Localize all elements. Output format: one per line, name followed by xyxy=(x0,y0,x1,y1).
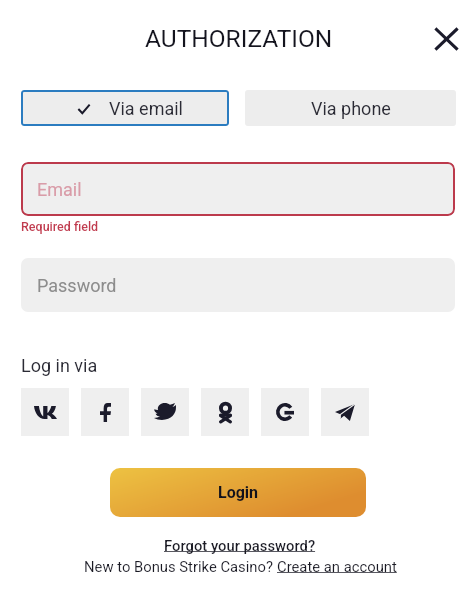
button[interactable]: Forgot your password? xyxy=(164,537,316,554)
button[interactable]: VK xyxy=(21,388,69,436)
staticText: Password xyxy=(37,275,117,296)
staticText: Log in via xyxy=(21,355,98,376)
button[interactable]: Via email xyxy=(21,90,229,126)
staticText: Via phone xyxy=(311,98,391,119)
button[interactable]: Facebook xyxy=(81,388,129,436)
button[interactable]: Close xyxy=(424,16,469,61)
button[interactable]: Twitter xyxy=(141,388,189,436)
button[interactable]: Google xyxy=(261,388,309,436)
button[interactable]: Login xyxy=(110,468,366,517)
staticText: New to Bonus Strike Casino? xyxy=(84,558,277,575)
button[interactable]: Password xyxy=(21,258,455,312)
staticText: Login xyxy=(218,483,259,502)
button[interactable]: Create an account xyxy=(277,558,397,575)
button[interactable]: Odnoklassniki xyxy=(201,388,249,436)
staticText: Via email xyxy=(109,98,183,119)
staticText: Email xyxy=(37,179,82,200)
button[interactable]: Via phone xyxy=(245,90,456,126)
button[interactable]: Email xyxy=(21,162,455,216)
staticText: Required field xyxy=(21,219,99,234)
button[interactable]: Telegram xyxy=(321,388,369,436)
staticText: AUTHORIZATION xyxy=(145,24,333,53)
